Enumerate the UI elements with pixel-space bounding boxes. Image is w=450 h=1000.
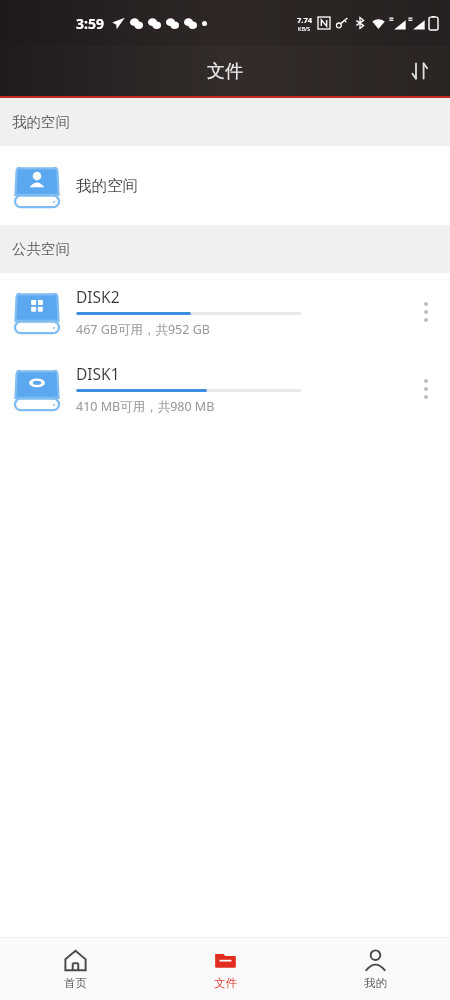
button[interactable]: More options <box>404 367 448 411</box>
staticText: 公共空间 <box>12 240 70 258</box>
button[interactable]: 文件 <box>150 938 300 1000</box>
staticText: 410 MB可用，共980 MB <box>76 398 215 415</box>
button[interactable]: 我的 <box>300 938 450 1000</box>
staticText: 我的 <box>364 976 387 990</box>
staticText: 文件 <box>207 60 243 83</box>
staticText: DISK1 <box>76 363 120 384</box>
staticText: 我的空间 <box>76 176 138 196</box>
staticText: KB/S <box>298 25 311 32</box>
button[interactable]: Sort <box>398 49 442 93</box>
button[interactable]: 首页 <box>0 938 150 1000</box>
button[interactable]: More options <box>404 290 448 334</box>
staticText: DISK2 <box>76 286 120 307</box>
staticText: 首页 <box>64 976 87 990</box>
button[interactable]: 我的空间 <box>0 146 450 225</box>
staticText: 3:59 <box>76 14 104 33</box>
staticText: 7.74 <box>297 15 312 25</box>
staticText: 文件 <box>214 976 237 990</box>
staticText: 我的空间 <box>12 113 70 131</box>
staticText: 467 GB可用，共952 GB <box>76 321 210 338</box>
button[interactable]: DISK1 <box>0 350 450 427</box>
button[interactable]: DISK2 <box>0 273 450 350</box>
